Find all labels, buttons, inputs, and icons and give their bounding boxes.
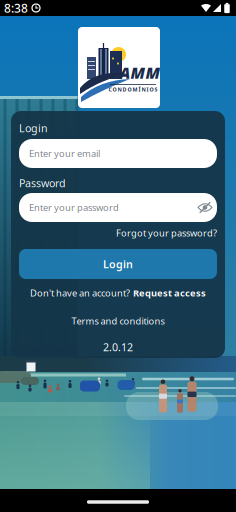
staticText: 8:38 xyxy=(4,0,28,16)
button[interactable]: Don't have an account? xyxy=(30,287,206,299)
staticText: 2.0.12 xyxy=(103,340,133,354)
staticText: C O N D O M Í N I O S xyxy=(108,86,157,93)
staticText: Enter your email xyxy=(29,147,100,160)
button[interactable]: Login xyxy=(19,249,217,279)
staticText: Forgot your password? xyxy=(116,227,217,239)
staticText: Login xyxy=(103,257,133,271)
staticText: Request access xyxy=(133,287,206,299)
staticText: Password xyxy=(19,176,66,190)
staticText: Login xyxy=(19,121,48,135)
staticText: Enter your password xyxy=(29,201,119,214)
staticText: AMM xyxy=(119,62,160,83)
button[interactable]: Show password xyxy=(195,197,215,217)
staticText: Don't have an account? xyxy=(30,287,130,299)
button[interactable]: Terms and conditions xyxy=(71,315,164,327)
staticText: Terms and conditions xyxy=(71,315,164,327)
button[interactable]: Forgot your password? xyxy=(116,227,217,239)
button[interactable]: Enter your email xyxy=(19,139,217,168)
button[interactable]: Enter your password xyxy=(19,193,217,222)
